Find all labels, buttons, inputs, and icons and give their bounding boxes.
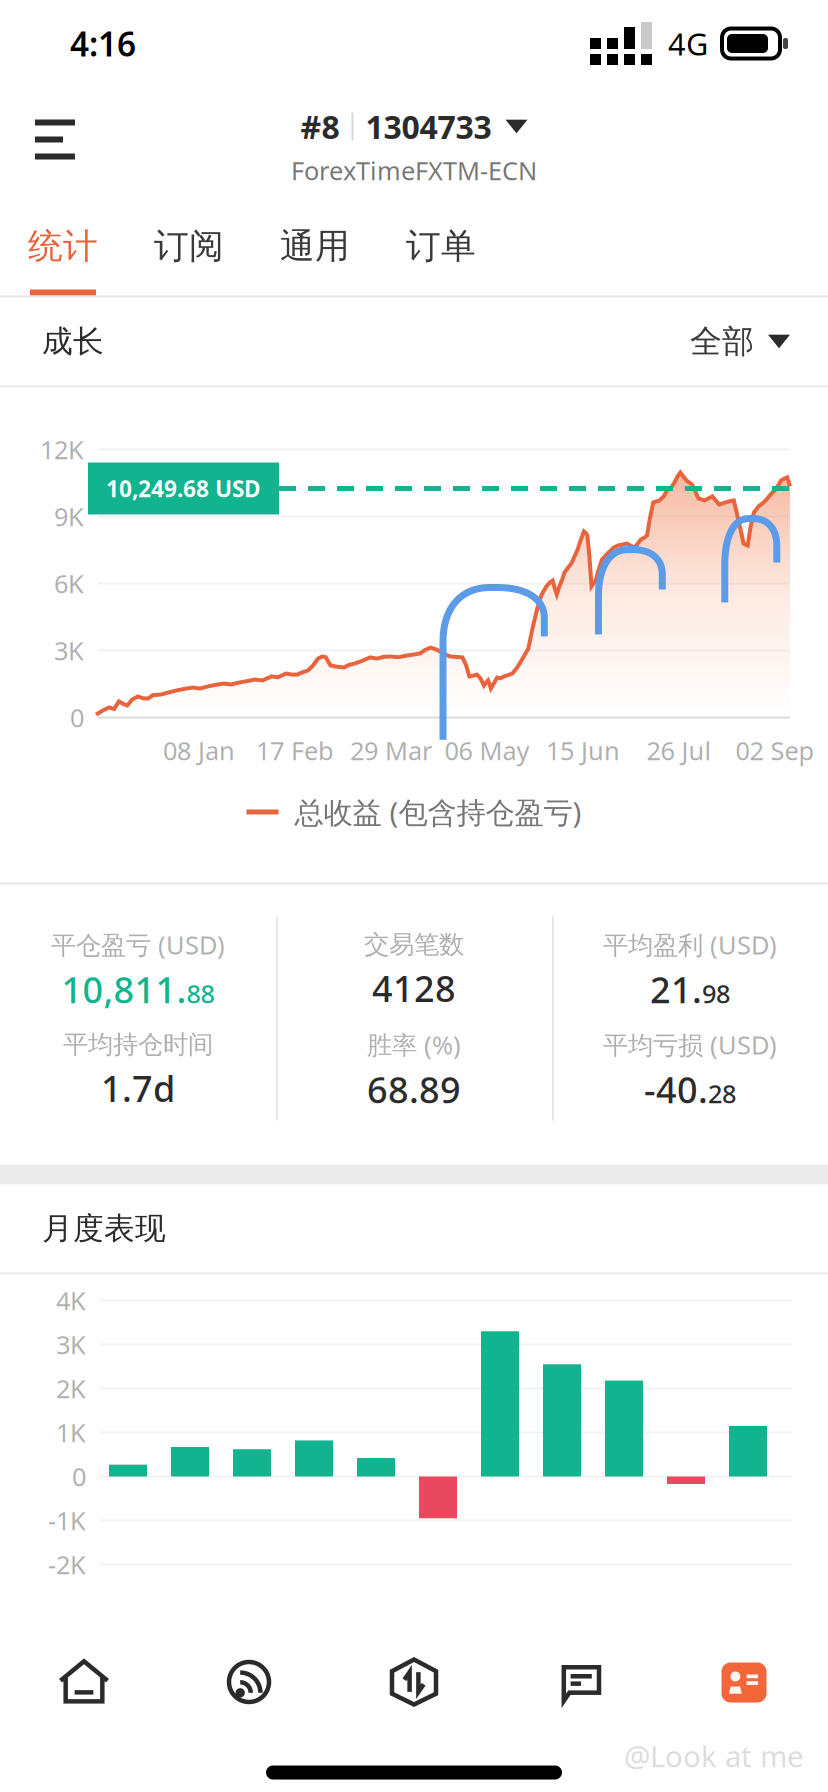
staticText: 平仓盈亏 (USD) — [51, 928, 225, 961]
staticText: 1K — [56, 1416, 86, 1449]
staticText: 10,249.68 USD — [106, 473, 261, 503]
staticText: 88 — [186, 977, 214, 1010]
staticText: 3K — [54, 634, 84, 667]
staticText: 15 Jun — [546, 733, 620, 767]
staticText: 通用 — [280, 225, 350, 267]
staticText: 98 — [702, 977, 730, 1010]
staticText: 9K — [54, 500, 84, 533]
staticText: -40. — [644, 1065, 708, 1113]
staticText: 0 — [72, 1460, 86, 1493]
staticText: 17 Feb — [256, 733, 334, 767]
staticText: #8 — [300, 105, 339, 148]
staticText: 29 Mar — [350, 733, 432, 767]
staticText: 订单 — [406, 225, 476, 267]
staticText: 4K — [56, 1284, 86, 1317]
button[interactable]: 订单 — [378, 189, 504, 295]
staticText: @Look at me — [624, 1736, 804, 1775]
staticText: 月度表现 — [42, 1210, 166, 1247]
staticText: 08 Jan — [163, 733, 235, 767]
staticText: -2K — [48, 1548, 86, 1581]
button[interactable]: Messages — [496, 1642, 661, 1734]
button[interactable]: 全部 — [690, 308, 790, 375]
staticText: 10,811. — [61, 965, 186, 1013]
staticText: 订阅 — [154, 225, 224, 267]
staticText: 胜率 (%) — [367, 1028, 461, 1061]
button[interactable]: Home — [1, 1642, 166, 1734]
staticText: 6K — [54, 567, 84, 600]
button[interactable]: 通用 — [252, 189, 378, 295]
staticText: 12K — [40, 433, 84, 466]
staticText: 06 May — [444, 733, 529, 767]
staticText: 4G — [668, 23, 708, 64]
staticText: 1304733 — [365, 105, 491, 148]
staticText: 成长 — [42, 323, 104, 360]
staticText: 2K — [56, 1372, 86, 1405]
staticText: 平均持仓时间 — [63, 1029, 213, 1060]
staticText: -1K — [48, 1504, 86, 1537]
staticText: 02 Sep — [735, 733, 814, 767]
button[interactable]: Signals — [166, 1642, 331, 1734]
button[interactable]: Profile — [661, 1642, 826, 1734]
staticText: 3K — [56, 1328, 86, 1361]
staticText: 4128 — [372, 964, 456, 1012]
staticText: 1.7d — [101, 1064, 175, 1112]
staticText: 平均盈利 (USD) — [603, 928, 777, 961]
staticText: 28 — [708, 1077, 736, 1110]
staticText: 统计 — [28, 225, 98, 267]
staticText: ForexTimeFXTM-ECN — [291, 154, 537, 187]
button[interactable]: Trade — [331, 1642, 496, 1734]
button[interactable]: 订阅 — [126, 189, 252, 295]
staticText: 26 Jul — [646, 733, 711, 767]
staticText: 68.89 — [367, 1065, 461, 1113]
staticText: 4:16 — [70, 21, 136, 66]
staticText: 平均亏损 (USD) — [603, 1028, 777, 1061]
staticText: 交易笔数 — [364, 929, 464, 960]
button[interactable]: 统计 — [0, 189, 126, 295]
staticText: 21. — [650, 965, 702, 1013]
staticText: 全部 — [690, 322, 754, 361]
staticText: 总收益 (包含持仓盈亏) — [294, 792, 581, 831]
button[interactable]: Menu — [0, 92, 110, 186]
staticText: 0 — [70, 701, 84, 734]
